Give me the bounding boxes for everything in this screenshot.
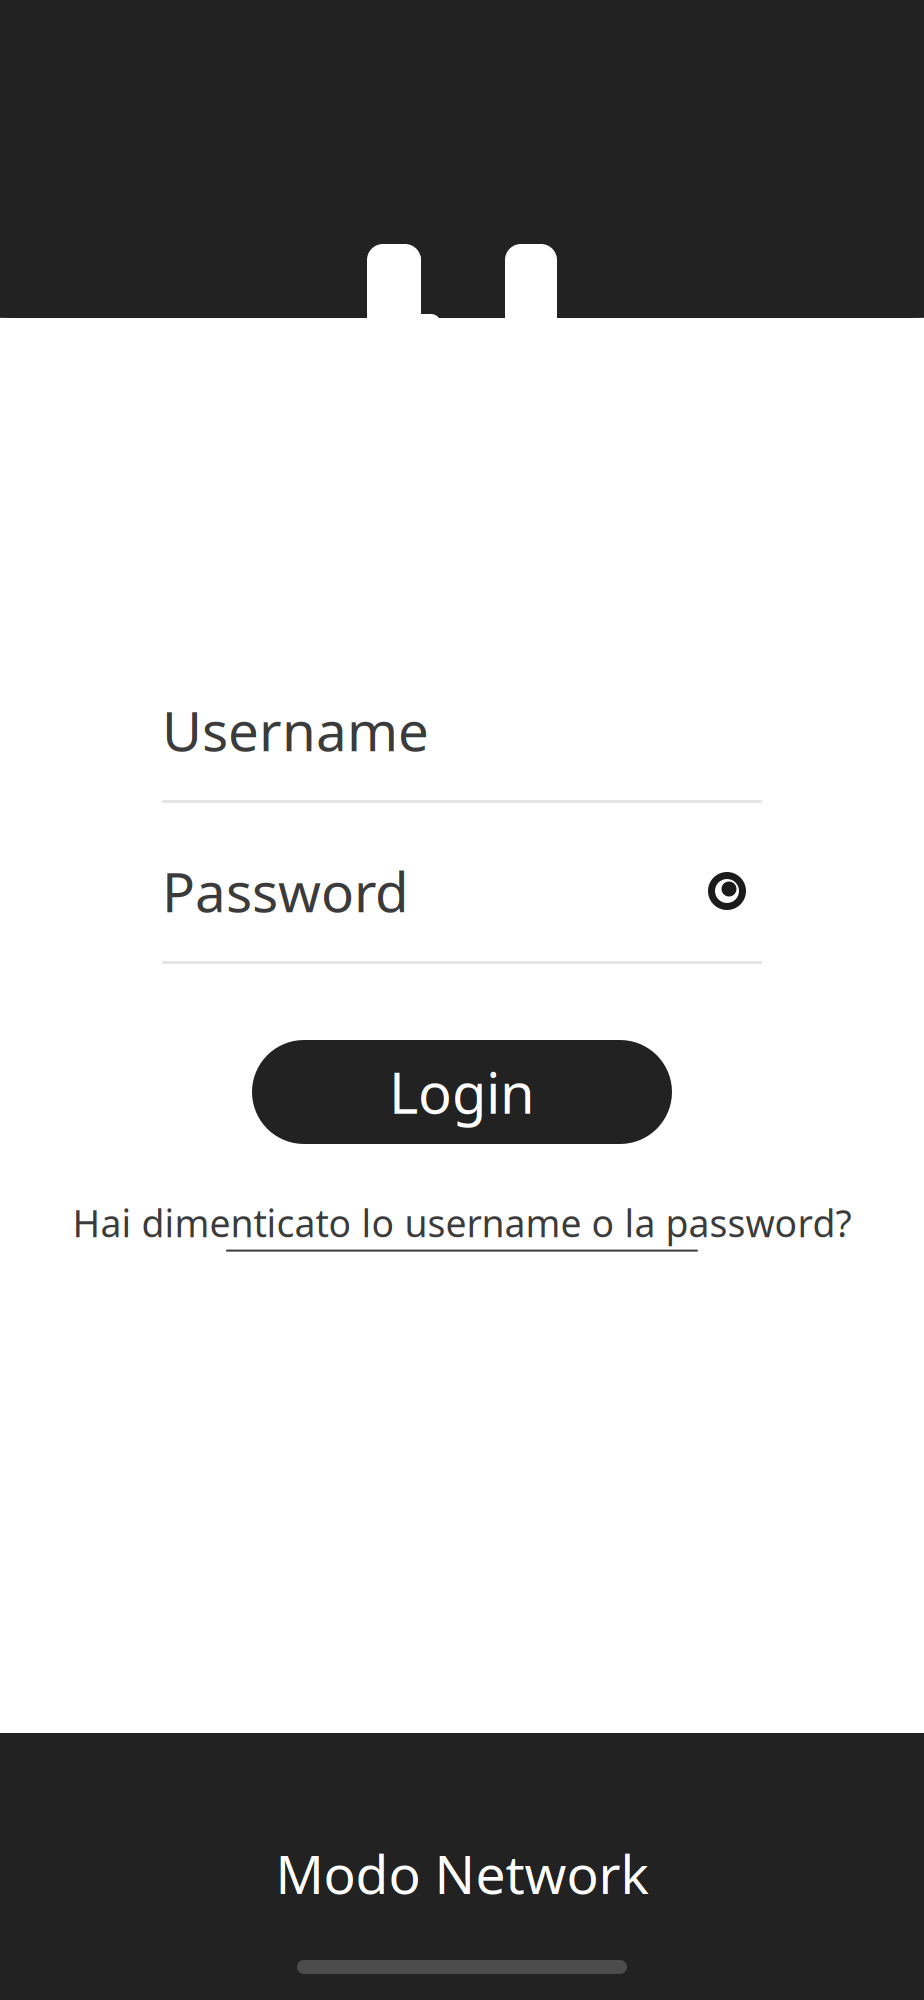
button[interactable]: Show password: [692, 863, 762, 919]
staticText: Modo Network: [275, 1838, 648, 1909]
staticText: Hai dimenticato lo username o la passwor…: [72, 1198, 851, 1248]
staticText: Username: [162, 694, 429, 766]
button[interactable]: Hai dimenticato lo username o la passwor…: [72, 1198, 851, 1252]
staticText: Login: [389, 1055, 535, 1129]
staticText: Password: [162, 855, 409, 927]
button[interactable]: Login: [252, 1040, 672, 1144]
